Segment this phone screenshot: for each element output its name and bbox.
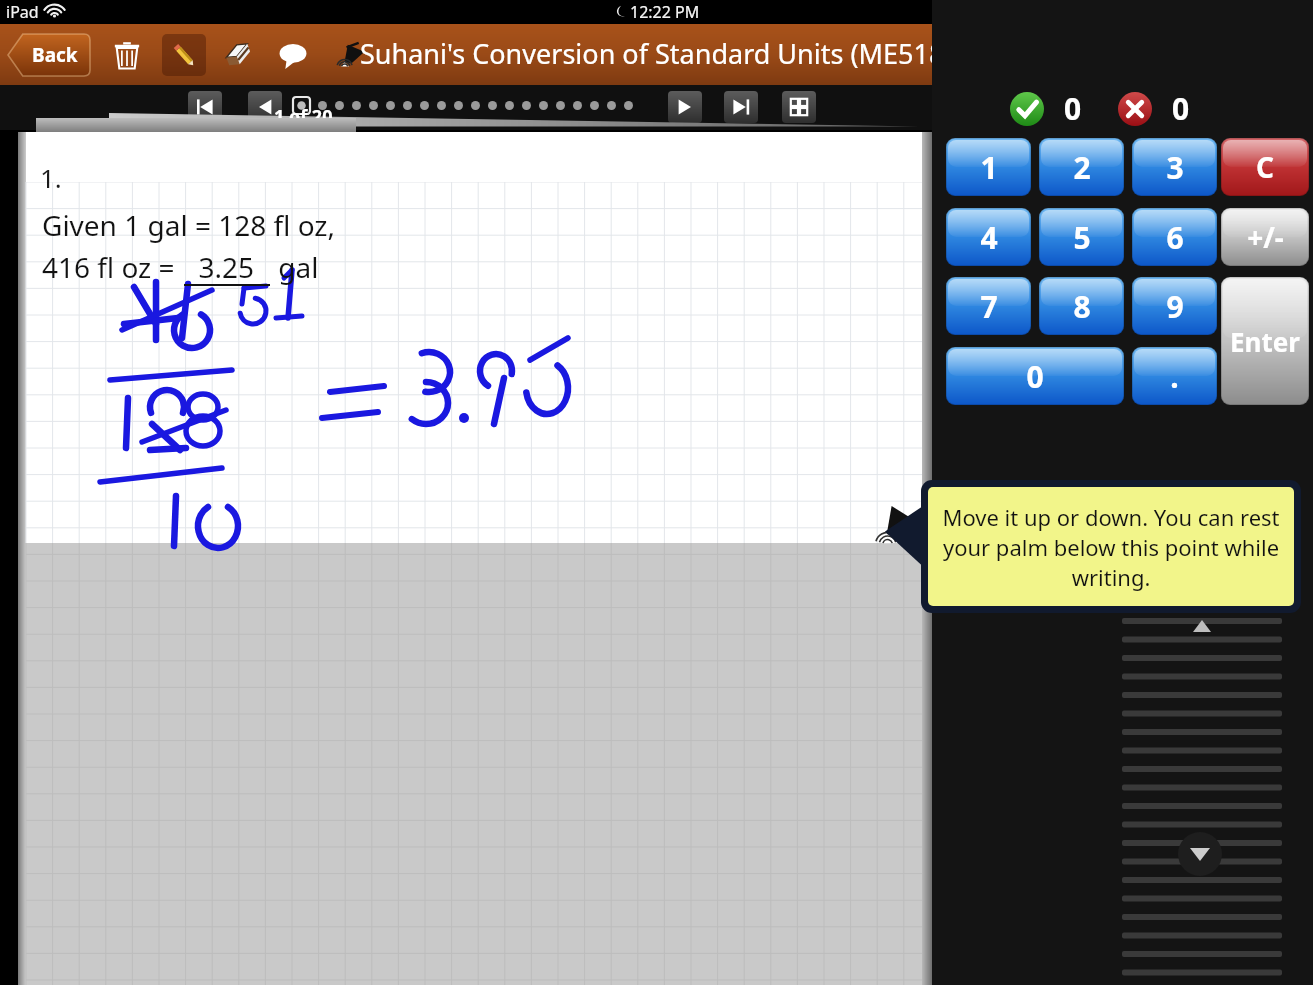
- staticText: 5: [1073, 217, 1091, 258]
- staticText: iPad: [6, 1, 39, 23]
- button[interactable]: 6: [1132, 208, 1217, 266]
- staticText: 3.25: [184, 248, 269, 286]
- button[interactable]: 8: [1039, 277, 1124, 335]
- button[interactable]: Page 17: [573, 101, 582, 110]
- staticText: Enter: [1230, 324, 1300, 359]
- button[interactable]: Page 7: [403, 101, 412, 110]
- button[interactable]: Correct count: [1010, 92, 1044, 126]
- button[interactable]: Enter: [1221, 277, 1309, 405]
- button[interactable]: 0: [946, 347, 1124, 405]
- button[interactable]: Page 14: [522, 101, 531, 110]
- button[interactable]: Page 5: [369, 101, 378, 110]
- button[interactable]: Eraser: [216, 34, 258, 76]
- button[interactable]: Previous page: [248, 91, 282, 123]
- staticText: 4: [980, 217, 998, 258]
- button[interactable]: Palm rest divider: [878, 498, 918, 556]
- button[interactable]: 2: [1039, 138, 1124, 196]
- button[interactable]: Back: [8, 34, 90, 76]
- staticText: 1: [980, 147, 998, 188]
- button[interactable]: Scroll down: [1178, 832, 1222, 876]
- staticText: 12:22 PM: [630, 1, 700, 23]
- button[interactable]: Page 6: [386, 101, 395, 110]
- button[interactable]: Page 13: [505, 101, 514, 110]
- button[interactable]: Page 15: [539, 101, 548, 110]
- button[interactable]: Comment: [272, 34, 314, 76]
- staticText: Given 1 gal = 128 fl oz,: [42, 206, 336, 244]
- staticText: 0: [1172, 88, 1190, 129]
- button[interactable]: 1: [946, 138, 1031, 196]
- button[interactable]: Palm rest: [330, 34, 372, 76]
- staticText: Back: [32, 42, 78, 68]
- button[interactable]: Page 9: [437, 101, 446, 110]
- button[interactable]: Page 16: [556, 101, 565, 110]
- staticText: .: [1170, 356, 1179, 397]
- staticText: 6: [1166, 217, 1184, 258]
- button[interactable]: Page 4: [352, 101, 361, 110]
- button[interactable]: Last page: [724, 91, 758, 123]
- button[interactable]: Page 10: [454, 101, 463, 110]
- staticText: +/-: [1247, 218, 1284, 256]
- staticText: C: [1256, 148, 1274, 186]
- staticText: 8: [1073, 286, 1091, 327]
- button[interactable]: Next page: [668, 91, 702, 123]
- button[interactable]: Page 1: [293, 97, 310, 114]
- staticText: 1 of 20: [274, 104, 333, 129]
- staticText: 416 fl oz =: [42, 248, 182, 286]
- button[interactable]: Delete: [106, 34, 148, 76]
- button[interactable]: 4: [946, 208, 1031, 266]
- staticText: 9: [1166, 286, 1184, 327]
- button[interactable]: Page 11: [471, 101, 480, 110]
- staticText: Move it up or down. You can rest your pa…: [940, 502, 1282, 592]
- staticText: 0: [1026, 356, 1044, 397]
- staticText: 1.: [40, 160, 62, 195]
- button[interactable]: 3: [1132, 138, 1217, 196]
- button[interactable]: 9: [1132, 277, 1217, 335]
- button[interactable]: 5: [1039, 208, 1124, 266]
- button[interactable]: C: [1221, 138, 1309, 196]
- button[interactable]: 7: [946, 277, 1031, 335]
- button[interactable]: .: [1132, 347, 1217, 405]
- staticText: gal: [271, 248, 319, 286]
- button[interactable]: Page 18: [590, 101, 599, 110]
- button[interactable]: Page 3: [335, 101, 344, 110]
- button[interactable]: Move it up or down. You can rest your pa…: [928, 487, 1294, 606]
- button[interactable]: +/-: [1221, 208, 1309, 266]
- button[interactable]: Page 19: [607, 101, 616, 110]
- staticText: 2: [1073, 147, 1091, 188]
- button[interactable]: Page 8: [420, 101, 429, 110]
- staticText: 0: [1064, 88, 1082, 129]
- button[interactable]: Page 2: [318, 101, 327, 110]
- button[interactable]: Scroll up: [1184, 608, 1220, 644]
- button[interactable]: 1.: [26, 132, 922, 985]
- staticText: Suhani's Conversion of Standard Units (M…: [360, 35, 953, 72]
- staticText: 7: [980, 286, 998, 327]
- button[interactable]: First page: [188, 91, 222, 123]
- button[interactable]: Page 20: [624, 101, 633, 110]
- button[interactable]: Pen: [162, 34, 206, 76]
- button[interactable]: All pages: [782, 91, 816, 123]
- staticText: 3: [1166, 147, 1184, 188]
- button[interactable]: Page 12: [488, 101, 497, 110]
- button[interactable]: Incorrect count: [1118, 92, 1152, 126]
